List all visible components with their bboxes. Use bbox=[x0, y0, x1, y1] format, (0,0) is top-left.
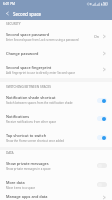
button[interactable]: Notifications bbox=[0, 109, 112, 128]
staticText: Manage apps and data bbox=[6, 194, 48, 199]
button[interactable]: On bbox=[97, 116, 107, 121]
staticText: Switch between spaces from the notificat… bbox=[6, 101, 73, 105]
staticText: Enter Second space from Lock screen usin… bbox=[6, 38, 79, 42]
button[interactable]: Second space password bbox=[0, 27, 112, 46]
button[interactable]: Change password bbox=[0, 46, 112, 61]
staticText: SECURITY bbox=[6, 22, 21, 26]
staticText: 6:01 PM bbox=[3, 2, 15, 6]
staticText: Add fingerprint to use to directly enter… bbox=[6, 71, 76, 75]
staticText: Tap shortcut to switch bbox=[6, 133, 47, 138]
staticText: Show private messages in a space bbox=[6, 167, 51, 171]
staticText: SWITCHING BETWEEN SPACES bbox=[6, 85, 51, 89]
button[interactable]: On bbox=[97, 135, 107, 140]
staticText: Show the Home screen shortcut once added bbox=[6, 139, 65, 143]
staticText: DATA bbox=[6, 151, 14, 155]
staticText: Show private messages bbox=[6, 161, 49, 166]
button[interactable]: Show private messages bbox=[0, 156, 112, 175]
button[interactable]: Tap shortcut to switch bbox=[0, 128, 112, 147]
staticText: Receive notifications from other space bbox=[6, 120, 57, 124]
button[interactable]: Notification shade shortcut bbox=[0, 91, 112, 109]
staticText: Second space password bbox=[6, 32, 50, 37]
staticText: Notification shade shortcut bbox=[6, 95, 56, 100]
staticText: Move items to a space bbox=[6, 186, 36, 190]
button[interactable]: Off bbox=[97, 182, 107, 187]
button[interactable]: More data bbox=[0, 175, 112, 194]
staticText: Second space fingerprint bbox=[6, 65, 52, 70]
staticText: Notifications bbox=[6, 114, 30, 119]
staticText: On bbox=[94, 34, 100, 39]
button[interactable]: On bbox=[97, 98, 107, 103]
button[interactable]: Back bbox=[3, 9, 12, 18]
staticText: More data bbox=[6, 180, 25, 185]
button[interactable]: Off bbox=[97, 163, 107, 168]
button[interactable]: Manage apps and data bbox=[0, 194, 112, 200]
staticText: Second space bbox=[13, 11, 42, 17]
button[interactable]: Second space fingerprint bbox=[0, 61, 112, 78]
staticText: Change password bbox=[6, 51, 39, 56]
